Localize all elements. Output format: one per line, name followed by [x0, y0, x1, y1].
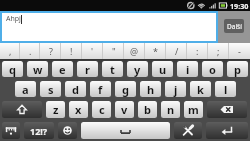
staticText: n: [167, 102, 175, 117]
staticText: h: [147, 82, 155, 97]
button[interactable]: Shift: [2, 101, 42, 118]
button[interactable]: n: [161, 101, 180, 118]
button[interactable]: t: [102, 61, 123, 77]
staticText: o: [209, 62, 216, 77]
button[interactable]: r: [77, 61, 98, 77]
button[interactable]: o: [202, 61, 223, 77]
button[interactable]: Switch input method: [2, 122, 20, 139]
button[interactable]: Ahpj: [2, 13, 216, 41]
staticText: -: [238, 45, 241, 57]
staticText: u: [159, 62, 167, 77]
staticText: s: [48, 82, 54, 97]
button[interactable]: a: [15, 81, 36, 97]
staticText: g: [122, 82, 129, 97]
button[interactable]: b: [138, 101, 157, 118]
button[interactable]: q: [2, 61, 23, 77]
button[interactable]: *: [145, 43, 166, 59]
staticText: y: [134, 62, 141, 77]
button[interactable]: ;: [208, 43, 229, 59]
button[interactable]: x: [69, 101, 88, 118]
button[interactable]: s: [40, 81, 61, 97]
button[interactable]: !: [61, 43, 82, 59]
button[interactable]: m: [184, 101, 203, 118]
button[interactable]: e: [52, 61, 73, 77]
staticText: q: [9, 62, 16, 77]
staticText: j: [174, 82, 178, 97]
staticText: x: [75, 102, 82, 117]
button[interactable]: Backspace: [207, 101, 247, 118]
button[interactable]: ,: [0, 43, 20, 59]
staticText: @: [130, 45, 139, 57]
staticText: ,: [9, 45, 12, 57]
button[interactable]: 12!?: [24, 122, 54, 139]
staticText: w: [33, 62, 43, 77]
staticText: .: [29, 45, 32, 57]
button[interactable]: z: [46, 101, 65, 118]
button[interactable]: .: [20, 43, 40, 59]
staticText: 12!?: [30, 125, 48, 137]
staticText: :: [196, 45, 199, 57]
staticText: t: [110, 62, 115, 77]
button[interactable]: Enter: [206, 122, 248, 139]
button[interactable]: i: [177, 61, 198, 77]
staticText: r: [85, 62, 90, 77]
staticText: ?: [49, 45, 53, 57]
button[interactable]: h: [140, 81, 161, 97]
button[interactable]: Settings: [174, 122, 202, 139]
staticText: Ahpj: [6, 14, 21, 24]
staticText: v: [121, 102, 128, 117]
staticText: p: [234, 62, 241, 77]
button[interactable]: ': [82, 43, 103, 59]
button[interactable]: Další: [224, 19, 244, 33]
button[interactable]: u: [152, 61, 173, 77]
button[interactable]: y: [127, 61, 148, 77]
button[interactable]: j: [165, 81, 186, 97]
staticText: e: [59, 62, 66, 77]
staticText: m: [188, 102, 199, 117]
button[interactable]: g: [115, 81, 136, 97]
button[interactable]: /: [166, 43, 187, 59]
staticText: z: [53, 102, 59, 117]
button[interactable]: Emoji: [58, 122, 77, 139]
staticText: ': [91, 45, 94, 57]
staticText: d: [72, 82, 79, 97]
staticText: f: [98, 82, 103, 97]
button[interactable]: ": [103, 43, 124, 59]
staticText: b: [144, 102, 151, 117]
button[interactable]: Space: [81, 122, 170, 139]
staticText: c: [99, 102, 105, 117]
staticText: i: [186, 62, 190, 77]
staticText: a: [22, 82, 29, 97]
staticText: 19:30: [230, 1, 249, 11]
button[interactable]: w: [27, 61, 48, 77]
button[interactable]: -: [229, 43, 250, 59]
button[interactable]: f: [90, 81, 111, 97]
staticText: *: [153, 45, 158, 57]
staticText: l: [224, 82, 228, 97]
button[interactable]: d: [65, 81, 86, 97]
button[interactable]: l: [215, 81, 236, 97]
button[interactable]: v: [115, 101, 134, 118]
staticText: !: [70, 45, 73, 57]
button[interactable]: k: [190, 81, 211, 97]
staticText: ": [112, 45, 116, 57]
staticText: /: [175, 45, 179, 57]
staticText: k: [197, 82, 204, 97]
button[interactable]: p: [227, 61, 248, 77]
button[interactable]: ?: [40, 43, 61, 59]
button[interactable]: c: [92, 101, 111, 118]
button[interactable]: :: [187, 43, 208, 59]
button[interactable]: @: [124, 43, 145, 59]
staticText: Další: [227, 22, 242, 31]
staticText: ;: [217, 45, 220, 57]
